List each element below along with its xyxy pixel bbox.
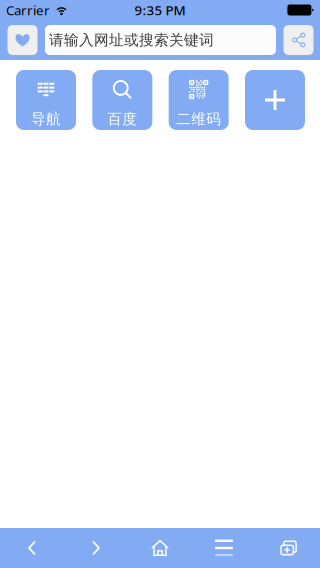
staticText: 请输入网址或搜索关键词 bbox=[49, 31, 214, 49]
button[interactable]: 导航 bbox=[16, 70, 76, 130]
button[interactable]: Back bbox=[0, 528, 64, 568]
button[interactable]: Share bbox=[283, 25, 313, 55]
button[interactable]: Tabs bbox=[256, 528, 320, 568]
staticText: Carrier bbox=[6, 1, 50, 19]
button[interactable]: 二维码 bbox=[169, 70, 229, 130]
button[interactable]: Home bbox=[128, 528, 192, 568]
staticText: 9:35 PM bbox=[134, 1, 185, 19]
staticText: 二维码 bbox=[176, 110, 221, 128]
button[interactable]: 请输入网址或搜索关键词 bbox=[45, 25, 276, 55]
button[interactable]: Forward bbox=[64, 528, 128, 568]
staticText: 百度 bbox=[107, 110, 137, 128]
button[interactable]: Menu bbox=[192, 528, 256, 568]
staticText: 导航 bbox=[31, 110, 61, 128]
button[interactable]: 百度 bbox=[92, 70, 152, 130]
button[interactable]: Bookmarks bbox=[7, 25, 37, 55]
button[interactable] bbox=[245, 70, 305, 130]
